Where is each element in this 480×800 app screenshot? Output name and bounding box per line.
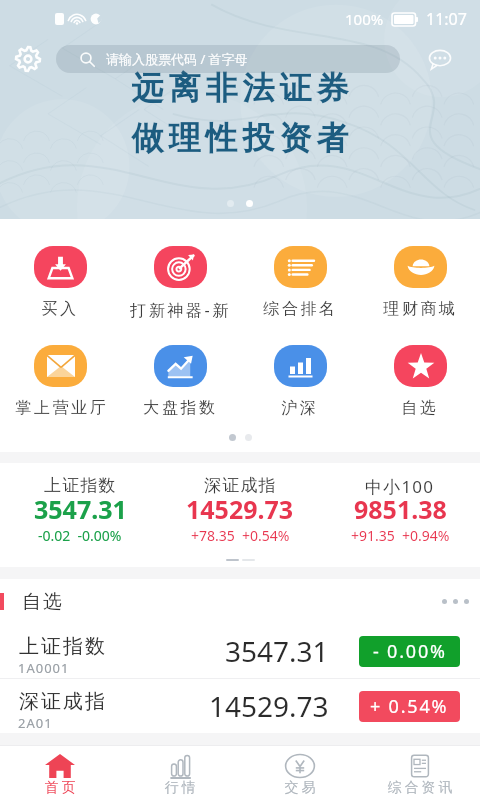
- staticText: 3547.31: [225, 632, 329, 670]
- staticText: 11:07: [426, 8, 467, 30]
- button[interactable]: More options: [432, 579, 478, 624]
- staticText: 综合资讯: [386, 779, 454, 797]
- button[interactable]: 请输入股票代码 / 首字母: [56, 45, 400, 73]
- button[interactable]: 买入: [0, 246, 120, 319]
- staticText: 买入: [41, 299, 79, 319]
- staticText: 100%: [345, 9, 384, 29]
- staticText: 深证成指: [18, 689, 106, 714]
- staticText: 14529.73: [186, 492, 294, 526]
- button[interactable]: 行情: [120, 746, 240, 800]
- staticText: 行情: [163, 779, 197, 797]
- staticText: 沪深: [281, 398, 319, 418]
- staticText: 大盘指数: [143, 398, 218, 418]
- staticText: 上证指数: [18, 634, 106, 659]
- staticText: 首页: [43, 779, 77, 797]
- staticText: 做理性投资者: [129, 118, 351, 158]
- staticText: 3547.31: [34, 492, 127, 526]
- button[interactable]: 综合资讯: [360, 746, 480, 800]
- button[interactable]: 上证指数: [0, 463, 160, 567]
- button[interactable]: 自选: [360, 345, 480, 418]
- button[interactable]: Messages: [400, 45, 480, 73]
- staticText: 请输入股票代码 / 首字母: [106, 50, 248, 68]
- staticText: 远离非法证券: [129, 68, 351, 108]
- staticText: 深证成指: [204, 475, 277, 496]
- button[interactable]: 综合排名: [240, 246, 360, 319]
- staticText: +78.35 +0.54%: [191, 526, 290, 545]
- staticText: -0.02 -0.00%: [38, 526, 122, 545]
- button[interactable]: 沪深: [240, 345, 360, 418]
- button[interactable]: 上证指数: [0, 624, 480, 678]
- staticText: - 0.00%: [373, 639, 447, 664]
- staticText: 自选: [21, 590, 63, 614]
- button[interactable]: 深证成指: [160, 463, 320, 567]
- button[interactable]: 首页: [0, 746, 120, 800]
- button[interactable]: 打新神器-新: [120, 246, 240, 321]
- staticText: 中小100: [365, 475, 435, 498]
- button[interactable]: 交易: [240, 746, 360, 800]
- staticText: 交易: [283, 779, 317, 797]
- button[interactable]: 中小100: [320, 463, 480, 567]
- staticText: 2A01: [18, 714, 53, 732]
- button[interactable]: Settings: [0, 45, 56, 73]
- staticText: 掌上营业厅: [14, 398, 107, 418]
- button[interactable]: 掌上营业厅: [0, 345, 120, 418]
- staticText: 1A0001: [18, 659, 70, 677]
- button[interactable]: 深证成指: [0, 679, 480, 733]
- staticText: 综合排名: [263, 299, 338, 319]
- button[interactable]: 理财商城: [360, 246, 480, 319]
- staticText: 自选: [401, 398, 439, 418]
- staticText: 14529.73: [209, 687, 329, 725]
- staticText: +91.35 +0.94%: [351, 526, 450, 545]
- staticText: 打新神器-新: [130, 299, 231, 321]
- staticText: 9851.38: [354, 492, 447, 526]
- staticText: 理财商城: [383, 299, 458, 319]
- staticText: 上证指数: [44, 475, 117, 496]
- staticText: + 0.54%: [370, 694, 449, 719]
- button[interactable]: 大盘指数: [120, 345, 240, 418]
